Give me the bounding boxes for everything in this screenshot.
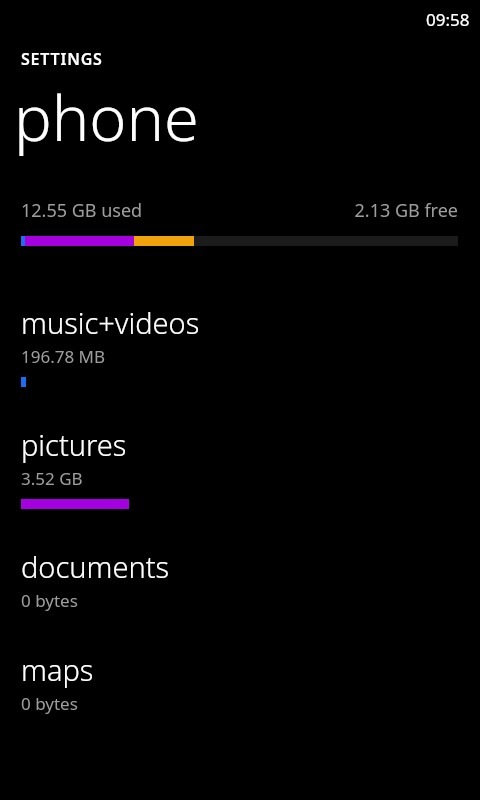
staticText: 3.52 GB — [21, 467, 83, 490]
staticText: phone — [14, 74, 199, 160]
staticText: pictures — [21, 425, 127, 464]
staticText: music+videos — [21, 303, 200, 342]
staticText: 0 bytes — [21, 692, 78, 715]
button[interactable]: music+videos — [0, 303, 480, 387]
button[interactable]: documents — [0, 547, 480, 612]
button[interactable]: maps — [0, 650, 480, 715]
staticText: 09:58 — [426, 8, 470, 31]
staticText: 0 bytes — [21, 589, 78, 612]
button[interactable]: pictures — [0, 425, 480, 509]
staticText: maps — [21, 650, 94, 689]
staticText: 196.78 MB — [21, 345, 106, 368]
staticText: documents — [21, 547, 170, 586]
staticText: SETTINGS — [21, 48, 103, 70]
staticText: 12.55 GB used — [21, 198, 143, 223]
staticText: 2.13 GB free — [354, 198, 458, 223]
